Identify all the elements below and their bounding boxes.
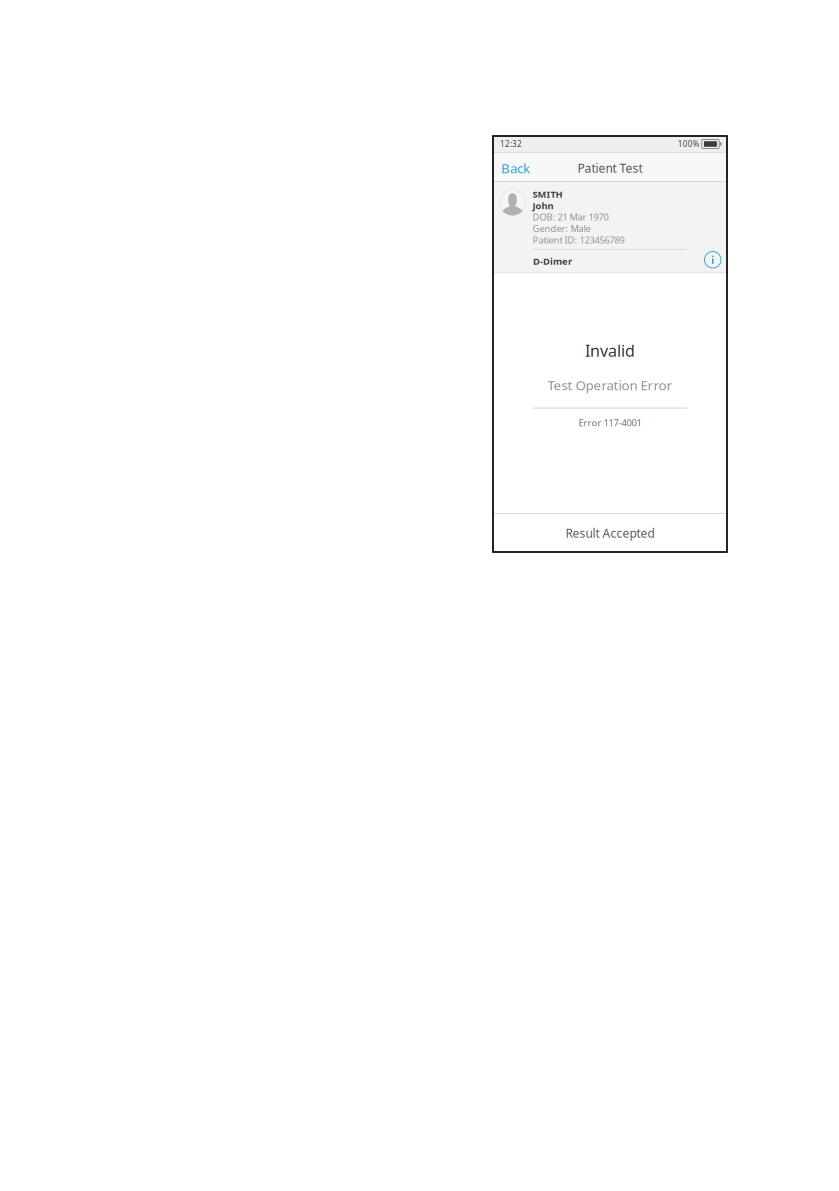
staticText: DOB: 21 Mar 1970 <box>532 211 608 223</box>
button[interactable]: Result Accepted <box>493 514 727 552</box>
button[interactable]: Test information <box>704 250 721 272</box>
button[interactable]: D-Dimer <box>533 250 572 272</box>
staticText: 12:32 <box>500 139 522 149</box>
staticText: Test Operation Error <box>547 376 672 394</box>
staticText: Invalid <box>585 340 635 361</box>
staticText: Result Accepted <box>565 525 654 541</box>
button[interactable]: Back <box>493 153 538 181</box>
staticText: Error 117-4001 <box>578 416 641 429</box>
staticText: Patient Test <box>577 160 642 176</box>
staticText: SMITH <box>532 188 562 200</box>
staticText: Back <box>501 159 530 177</box>
staticText: Patient ID: 123456789 <box>532 234 624 246</box>
staticText: Gender: Male <box>532 222 590 235</box>
staticText: John <box>532 199 553 212</box>
staticText: D-Dimer <box>533 255 572 267</box>
staticText: 100% <box>678 139 700 149</box>
button[interactable]: SMITH <box>493 182 727 245</box>
